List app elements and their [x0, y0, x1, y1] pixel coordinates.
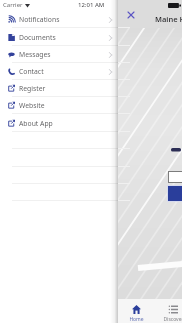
button[interactable]: Contact: [0, 63, 118, 80]
staticText: 12:01 AM: [78, 1, 105, 9]
button[interactable]: Register: [0, 80, 118, 97]
staticText: Notifications: [19, 15, 60, 24]
staticText: Messages: [19, 50, 51, 59]
staticText: Carrier: [3, 1, 23, 9]
button[interactable]: Close menu: [125, 9, 137, 21]
staticText: Maine Hunting: [155, 14, 182, 24]
staticText: Contact: [19, 67, 44, 76]
button[interactable]: Messages: [0, 46, 118, 63]
staticText: Home: [129, 316, 144, 323]
button[interactable]: About App: [0, 115, 118, 132]
button[interactable]: Discover: [155, 299, 182, 323]
staticText: About App: [19, 119, 53, 128]
staticText: Register: [19, 84, 46, 93]
button[interactable]: Website: [0, 97, 118, 114]
button[interactable]: Documents: [0, 29, 118, 46]
button[interactable]: Notifications: [0, 11, 118, 28]
staticText: Documents: [19, 33, 56, 42]
staticText: Website: [19, 101, 45, 110]
staticText: Discover: [163, 316, 182, 323]
button[interactable]: Home: [118, 299, 155, 323]
